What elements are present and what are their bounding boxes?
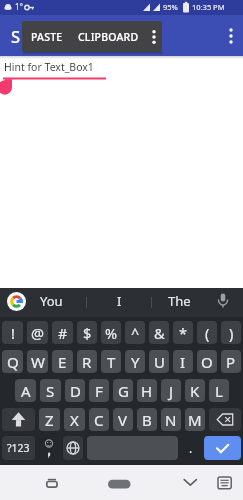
- staticText: Z: [45, 410, 54, 430]
- button[interactable]: T: [101, 350, 121, 373]
- staticText: 1°: [15, 1, 23, 12]
- staticText: A: [21, 381, 31, 401]
- staticText: D: [70, 381, 81, 401]
- staticText: The: [168, 292, 191, 310]
- button[interactable]: M: [185, 408, 205, 431]
- staticText: ^: [131, 323, 140, 343]
- staticText: *: [179, 323, 187, 343]
- staticText: P: [226, 352, 236, 372]
- staticText: 95%: [163, 2, 178, 12]
- button[interactable]: ): [221, 321, 241, 344]
- staticText: .: [189, 440, 193, 456]
- staticText: ?123: [7, 441, 30, 455]
- button[interactable]: [39, 436, 59, 460]
- staticText: V: [118, 410, 128, 430]
- staticText: You: [40, 292, 63, 310]
- staticText: F: [95, 381, 103, 401]
- staticText: H: [141, 381, 153, 401]
- button[interactable]: [219, 15, 243, 56]
- button[interactable]: N: [161, 408, 181, 431]
- staticText: Q: [7, 352, 19, 372]
- button[interactable]: I: [173, 350, 193, 373]
- button[interactable]: [178, 473, 202, 493]
- button[interactable]: X: [64, 408, 85, 431]
- staticText: R: [82, 352, 92, 372]
- button[interactable]: [212, 473, 236, 493]
- button[interactable]: *: [173, 321, 193, 344]
- button[interactable]: B: [137, 408, 157, 431]
- staticText: PASTE: [31, 30, 63, 44]
- button[interactable]: #: [52, 321, 73, 344]
- staticText: (: [205, 323, 210, 343]
- button[interactable]: D: [65, 379, 85, 402]
- staticText: S: [11, 25, 21, 47]
- staticText: !: [11, 323, 15, 343]
- button[interactable]: Y: [125, 350, 145, 373]
- button[interactable]: F: [89, 379, 109, 402]
- button[interactable]: You: [28, 288, 74, 314]
- button[interactable]: K: [185, 379, 205, 402]
- staticText: E: [58, 352, 67, 372]
- button[interactable]: [209, 408, 241, 431]
- staticText: W: [31, 352, 45, 372]
- staticText: L: [215, 381, 223, 401]
- staticText: J: [169, 381, 174, 401]
- button[interactable]: H: [137, 379, 157, 402]
- button[interactable]: [63, 436, 83, 460]
- button[interactable]: J: [161, 379, 181, 402]
- button[interactable]: [2, 408, 35, 431]
- staticText: X: [70, 410, 79, 430]
- button[interactable]: W: [27, 350, 48, 373]
- button[interactable]: E: [52, 350, 73, 373]
- staticText: K: [190, 381, 200, 401]
- button[interactable]: .: [182, 436, 200, 460]
- staticText: $: [83, 323, 92, 343]
- button[interactable]: I: [92, 288, 146, 314]
- button[interactable]: The: [156, 288, 202, 314]
- button[interactable]: [103, 473, 135, 493]
- button[interactable]: Q: [2, 350, 23, 373]
- button[interactable]: CLIPBOARD: [70, 21, 145, 52]
- staticText: @: [31, 323, 45, 343]
- staticText: T: [107, 352, 116, 372]
- staticText: N: [165, 410, 177, 430]
- button[interactable]: PASTE: [22, 21, 70, 52]
- staticText: U: [154, 352, 165, 372]
- button[interactable]: R: [77, 350, 97, 373]
- button[interactable]: O: [197, 350, 217, 373]
- staticText: 10:35 PM: [192, 2, 225, 12]
- button[interactable]: [204, 436, 241, 460]
- button[interactable]: $: [77, 321, 97, 344]
- staticText: &: [154, 323, 165, 343]
- button[interactable]: [145, 21, 162, 52]
- button[interactable]: [40, 473, 64, 493]
- staticText: Y: [131, 352, 140, 372]
- button[interactable]: V: [113, 408, 133, 431]
- button[interactable]: Z: [39, 408, 60, 431]
- staticText: %: [105, 323, 118, 343]
- button[interactable]: !: [2, 321, 23, 344]
- button[interactable]: (: [197, 321, 217, 344]
- button[interactable]: S: [40, 379, 61, 402]
- staticText: Hint for Text_Box1: [4, 60, 94, 74]
- button[interactable]: ^: [125, 321, 145, 344]
- staticText: CLIPBOARD: [78, 30, 139, 44]
- button[interactable]: %: [101, 321, 121, 344]
- button[interactable]: L: [209, 379, 229, 402]
- staticText: #: [58, 323, 68, 343]
- button[interactable]: @: [27, 321, 48, 344]
- button[interactable]: ?123: [2, 436, 35, 460]
- staticText: S: [46, 381, 55, 401]
- staticText: ): [229, 323, 234, 343]
- button[interactable]: G: [113, 379, 133, 402]
- button[interactable]: U: [149, 350, 169, 373]
- staticText: G: [118, 381, 129, 401]
- staticText: O: [201, 352, 213, 372]
- staticText: M: [188, 410, 202, 430]
- button[interactable]: &: [149, 321, 169, 344]
- button[interactable]: [7, 292, 26, 311]
- button[interactable]: P: [221, 350, 241, 373]
- button[interactable]: A: [15, 379, 36, 402]
- button[interactable]: C: [89, 408, 109, 431]
